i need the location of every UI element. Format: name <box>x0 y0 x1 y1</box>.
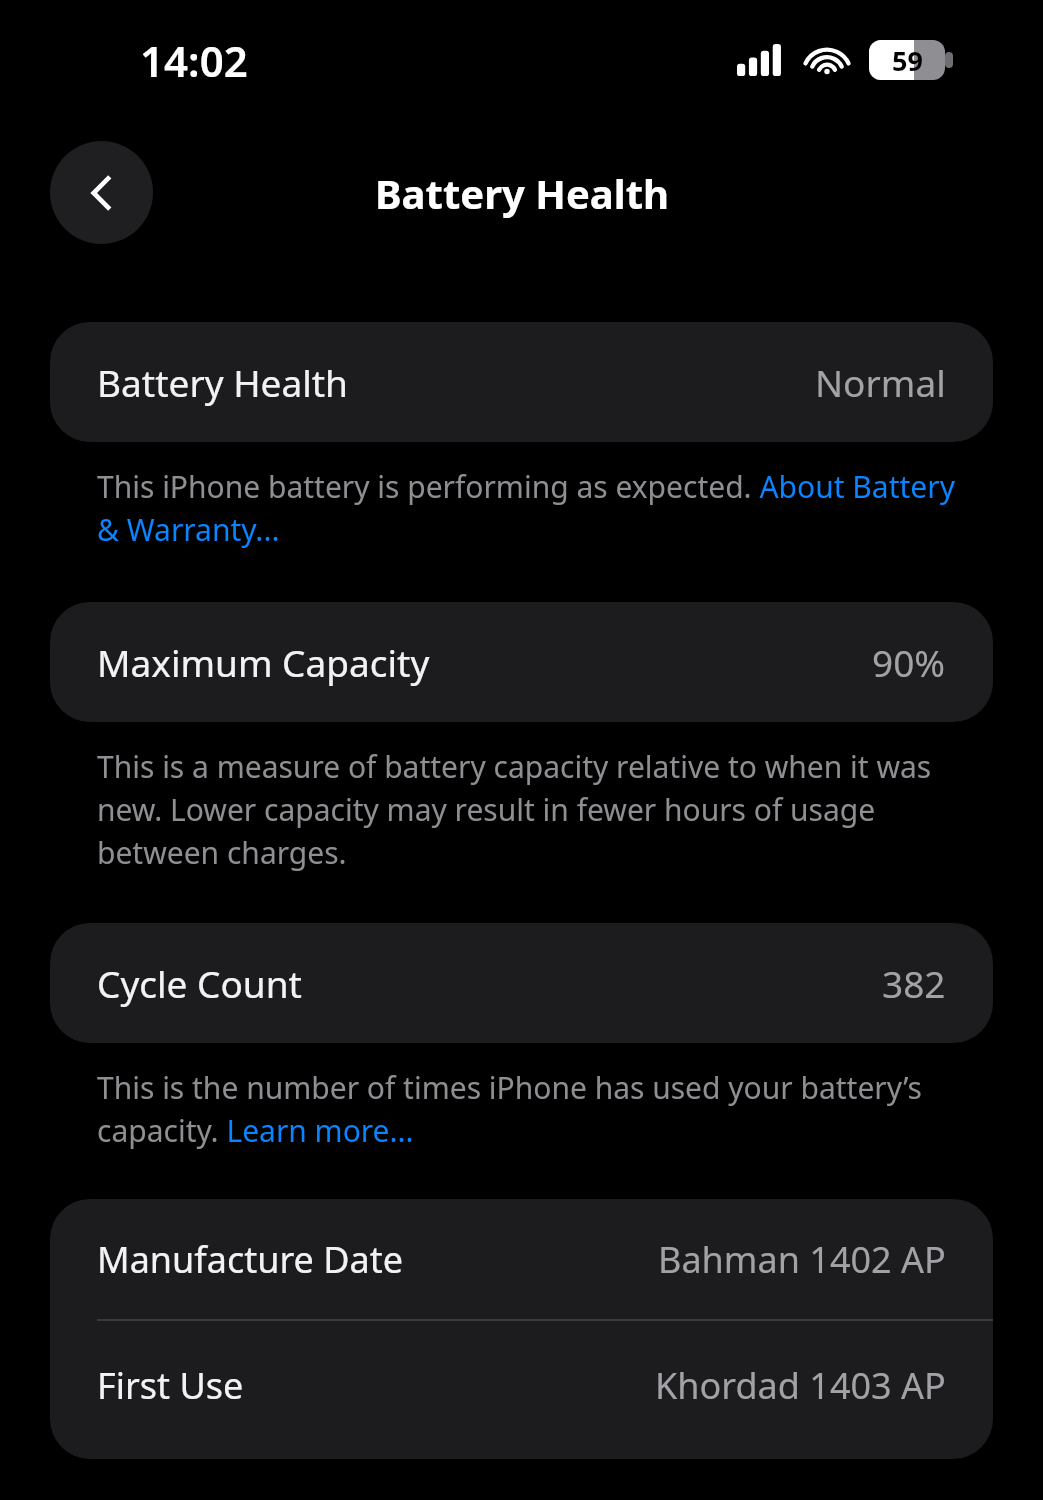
staticText: This iPhone battery is performing as exp… <box>97 466 973 550</box>
staticText: This is the number of times iPhone has u… <box>97 1067 973 1151</box>
button[interactable]: Battery Health <box>50 322 993 442</box>
staticText: 90% <box>872 637 946 687</box>
staticText: Manufacture Date <box>97 1235 404 1284</box>
button[interactable]: Manufacture Date <box>50 1199 993 1319</box>
staticText: Cycle Count <box>97 958 302 1008</box>
staticText: Bahman 1402 AP <box>658 1235 946 1284</box>
button[interactable]: Cycle Count <box>50 923 993 1043</box>
button[interactable]: Back <box>50 141 153 244</box>
staticText: 14:02 <box>140 32 248 89</box>
staticText: Khordad 1403 AP <box>655 1361 946 1410</box>
button[interactable]: First Use <box>50 1321 993 1449</box>
staticText: Normal <box>815 357 946 407</box>
staticText: 59 <box>892 42 923 79</box>
staticText: Maximum Capacity <box>97 637 430 687</box>
staticText: First Use <box>97 1361 244 1410</box>
staticText: This is a measure of battery capacity re… <box>97 746 973 873</box>
staticText: Battery Health <box>375 166 669 220</box>
button[interactable]: Maximum Capacity <box>50 602 993 722</box>
staticText: Battery Health <box>97 357 348 407</box>
staticText: 382 <box>882 958 946 1008</box>
